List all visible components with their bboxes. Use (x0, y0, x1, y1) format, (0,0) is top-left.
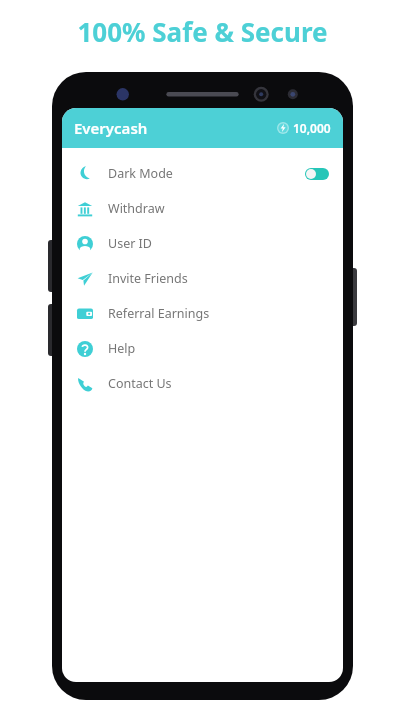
button[interactable]: Withdraw (62, 191, 343, 226)
staticText: 100% Safe & Secure (77, 14, 328, 49)
button[interactable]: Referral Earnings (62, 296, 343, 331)
staticText: Everycash (74, 118, 148, 138)
staticText: User ID (108, 235, 152, 252)
button[interactable]: User ID (62, 226, 343, 261)
button[interactable]: Help (62, 331, 343, 366)
staticText: Referral Earnings (108, 305, 210, 322)
staticText: 10,000 (293, 120, 331, 136)
button[interactable]: Dark Mode toggle (305, 168, 329, 180)
button[interactable]: 10,000 (277, 120, 331, 136)
staticText: Contact Us (108, 375, 172, 392)
button[interactable]: Contact Us (62, 366, 343, 401)
staticText: Dark Mode (108, 165, 173, 182)
button[interactable]: Dark Mode (62, 156, 343, 191)
staticText: Withdraw (108, 200, 165, 217)
staticText: Invite Friends (108, 270, 188, 287)
button[interactable]: Invite Friends (62, 261, 343, 296)
staticText: Help (108, 340, 136, 357)
